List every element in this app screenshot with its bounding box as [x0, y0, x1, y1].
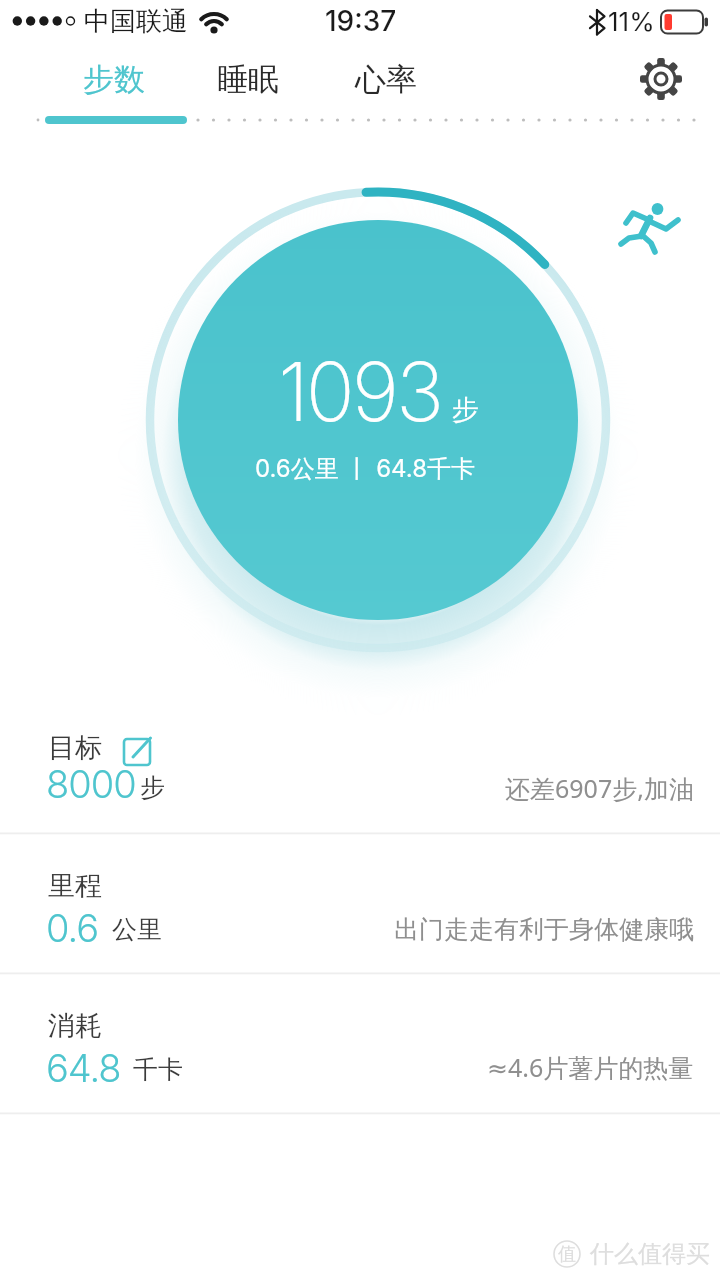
staticText: 公里 — [112, 914, 162, 945]
staticText: ≈4.6片薯片的热量 — [487, 1050, 694, 1084]
staticText: 1093 — [278, 343, 442, 441]
staticText: 步数 — [83, 60, 145, 99]
staticText: 中国联通 — [84, 5, 188, 38]
button[interactable]: 睡眠 — [188, 48, 308, 110]
staticText: 目标 — [48, 731, 102, 765]
button[interactable] — [0, 710, 720, 832]
button[interactable] — [633, 51, 689, 107]
staticText: 0.6公里 丨 64.8千卡 — [255, 454, 476, 484]
staticText: 64.8 — [46, 1045, 121, 1091]
staticText: 值 — [558, 1243, 576, 1266]
button[interactable]: 步数 — [54, 48, 174, 110]
staticText: 11% — [608, 6, 655, 37]
staticText: 消耗 — [48, 1009, 102, 1043]
staticText: 0.6 — [46, 905, 99, 951]
staticText: 睡眠 — [217, 60, 279, 99]
button[interactable] — [0, 834, 720, 972]
staticText: 出门走走有利于身体健康哦 — [394, 914, 694, 945]
staticText: 里程 — [48, 869, 102, 903]
staticText: 什么值得买 — [590, 1239, 710, 1269]
staticText: 步 — [140, 772, 165, 803]
staticText: 千卡 — [133, 1054, 183, 1085]
staticText: 步 — [452, 393, 479, 427]
button[interactable]: 心率 — [326, 48, 446, 110]
staticText: 心率 — [355, 60, 417, 99]
staticText: 还差6907步,加油 — [505, 771, 694, 805]
staticText: 8000 — [46, 761, 136, 807]
staticText: 19:37 — [325, 4, 397, 38]
button[interactable] — [0, 974, 720, 1112]
